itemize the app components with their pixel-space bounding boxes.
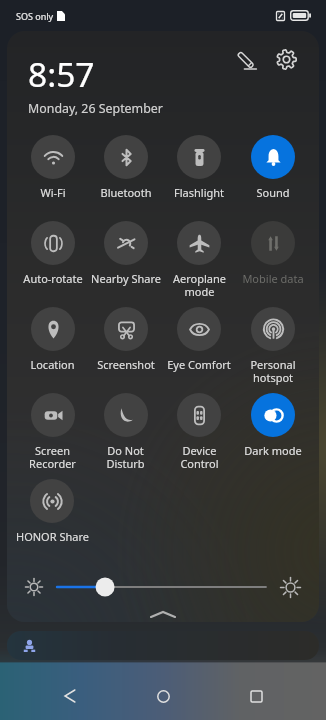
button[interactable]: Personal hotspot (236, 304, 310, 390)
button[interactable]: Auto-rotate (16, 218, 89, 304)
button[interactable]: Eye Comfort (162, 304, 236, 390)
staticText: Wi-Fi (40, 185, 66, 200)
button[interactable]: Home (141, 674, 185, 718)
staticText: Monday, 26 September (28, 100, 163, 117)
button[interactable]: Flashlight (162, 132, 236, 218)
button[interactable]: Do Not Disturb (89, 390, 162, 476)
button[interactable]: Recents (234, 674, 278, 718)
staticText: Flashlight (174, 185, 224, 200)
button[interactable]: Dark mode (236, 390, 310, 476)
button[interactable]: Bluetooth (89, 132, 162, 218)
staticText: Eye Comfort (167, 357, 231, 372)
button[interactable]: Settings (271, 44, 301, 74)
button[interactable]: Screen Recorder (16, 390, 89, 476)
staticText: SOS only (16, 10, 54, 22)
staticText: Bluetooth (100, 185, 152, 200)
button[interactable]: Back (49, 674, 93, 718)
staticText: Sound (256, 185, 290, 200)
button[interactable]: Wi-Fi (16, 132, 89, 218)
staticText: Screenshot (97, 357, 155, 372)
staticText: Screen Recorder (29, 443, 76, 471)
button[interactable]: Screenshot (89, 304, 162, 390)
staticText: Mobile data (242, 271, 304, 286)
staticText: Device Control (180, 443, 219, 471)
staticText: Aeroplane mode (173, 271, 226, 299)
button[interactable]: Edit (231, 44, 261, 74)
staticText: HONOR Share (16, 529, 89, 544)
staticText: 8:57 (28, 51, 95, 97)
button[interactable]: Sound (236, 132, 310, 218)
button[interactable]: HONOR Share (16, 476, 89, 562)
staticText: Dark mode (244, 443, 302, 458)
staticText: Location (30, 357, 75, 372)
button[interactable] (55, 576, 268, 598)
button[interactable] (7, 631, 319, 660)
staticText: Do Not Disturb (106, 443, 145, 471)
staticText: Auto-rotate (23, 271, 83, 286)
button[interactable]: Device Control (162, 390, 236, 476)
button[interactable]: Nearby Share (89, 218, 162, 304)
staticText: Nearby Share (91, 271, 161, 286)
button[interactable]: Aeroplane mode (162, 218, 236, 304)
button[interactable]: Mobile data (236, 218, 310, 304)
staticText: Personal hotspot (250, 357, 296, 385)
button[interactable]: Location (16, 304, 89, 390)
